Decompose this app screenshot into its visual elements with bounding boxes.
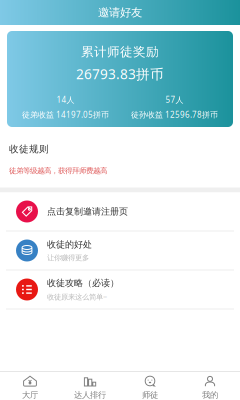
button[interactable]: 收徒攻略（必读） <box>0 270 240 308</box>
staticText: 57人 <box>165 94 183 105</box>
staticText: 让你赚得更多 <box>47 253 89 262</box>
staticText: 徒孙收益 12596.78拼币 <box>131 109 218 120</box>
staticText: 累计师徒奖励 <box>81 44 159 60</box>
staticText: 邀请好友 <box>98 5 142 20</box>
staticText: 徒弟收益 14197.05拼币 <box>22 109 109 120</box>
staticText: 点击复制邀请注册页 <box>47 206 128 217</box>
button[interactable]: 大厅 <box>0 372 60 400</box>
staticText: 14人 <box>56 94 74 105</box>
staticText: 收徒规则 <box>9 143 49 155</box>
staticText: 我的 <box>202 390 218 400</box>
button[interactable]: 点击复制邀请注册页 <box>0 192 240 230</box>
staticText: 26793.83拼币 <box>76 65 164 83</box>
staticText: 大厅 <box>22 390 38 400</box>
staticText: 收徒攻略（必读） <box>47 277 119 289</box>
staticText: 师徒 <box>142 390 158 400</box>
staticText: 徒弟等级越高，获得拜师费越高 <box>9 166 107 175</box>
staticText: 收徒原来这么简单~ <box>47 292 107 302</box>
staticText: 收徒的好处 <box>47 239 92 250</box>
button[interactable]: 我的 <box>180 372 240 400</box>
staticText: 达人排行 <box>74 390 106 400</box>
button[interactable]: 达人排行 <box>60 372 120 400</box>
button[interactable]: 师徒 <box>120 372 180 400</box>
button[interactable]: 收徒的好处 <box>0 231 240 269</box>
